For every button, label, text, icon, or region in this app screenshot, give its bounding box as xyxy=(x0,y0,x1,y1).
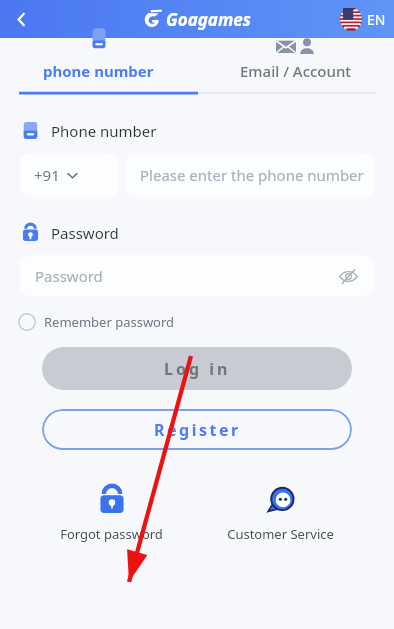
button[interactable]: Log in xyxy=(42,347,352,390)
button[interactable]: Register xyxy=(42,409,352,450)
staticText: Phone number xyxy=(51,121,157,141)
staticText: Customer Service xyxy=(227,525,334,543)
staticText: Remember password xyxy=(44,313,175,331)
button[interactable]: +91 xyxy=(20,153,118,197)
button[interactable]: Forgot password xyxy=(56,479,167,547)
staticText: Password xyxy=(35,266,103,286)
staticText: Forgot password xyxy=(60,525,163,543)
button[interactable]: Remember password xyxy=(18,313,175,331)
staticText: phone number xyxy=(43,61,154,81)
staticText: Email / Account xyxy=(240,61,352,81)
button[interactable]: Password xyxy=(20,255,374,296)
button[interactable]: Email / Account xyxy=(197,38,394,95)
button[interactable]: Customer Service xyxy=(223,479,338,547)
button[interactable]: Please enter the phone number xyxy=(126,153,374,197)
button[interactable]: EN xyxy=(340,8,386,30)
staticText: EN xyxy=(367,10,386,29)
staticText: +91 xyxy=(34,165,60,185)
button[interactable]: phone number xyxy=(0,38,197,95)
staticText: Log in xyxy=(164,358,231,380)
button[interactable]: Show password xyxy=(336,264,360,288)
staticText: Register xyxy=(154,419,241,441)
button[interactable]: Back xyxy=(4,2,38,36)
staticText: Please enter the phone number xyxy=(140,165,364,185)
staticText: Goagames xyxy=(166,8,251,31)
staticText: Password xyxy=(51,223,119,243)
